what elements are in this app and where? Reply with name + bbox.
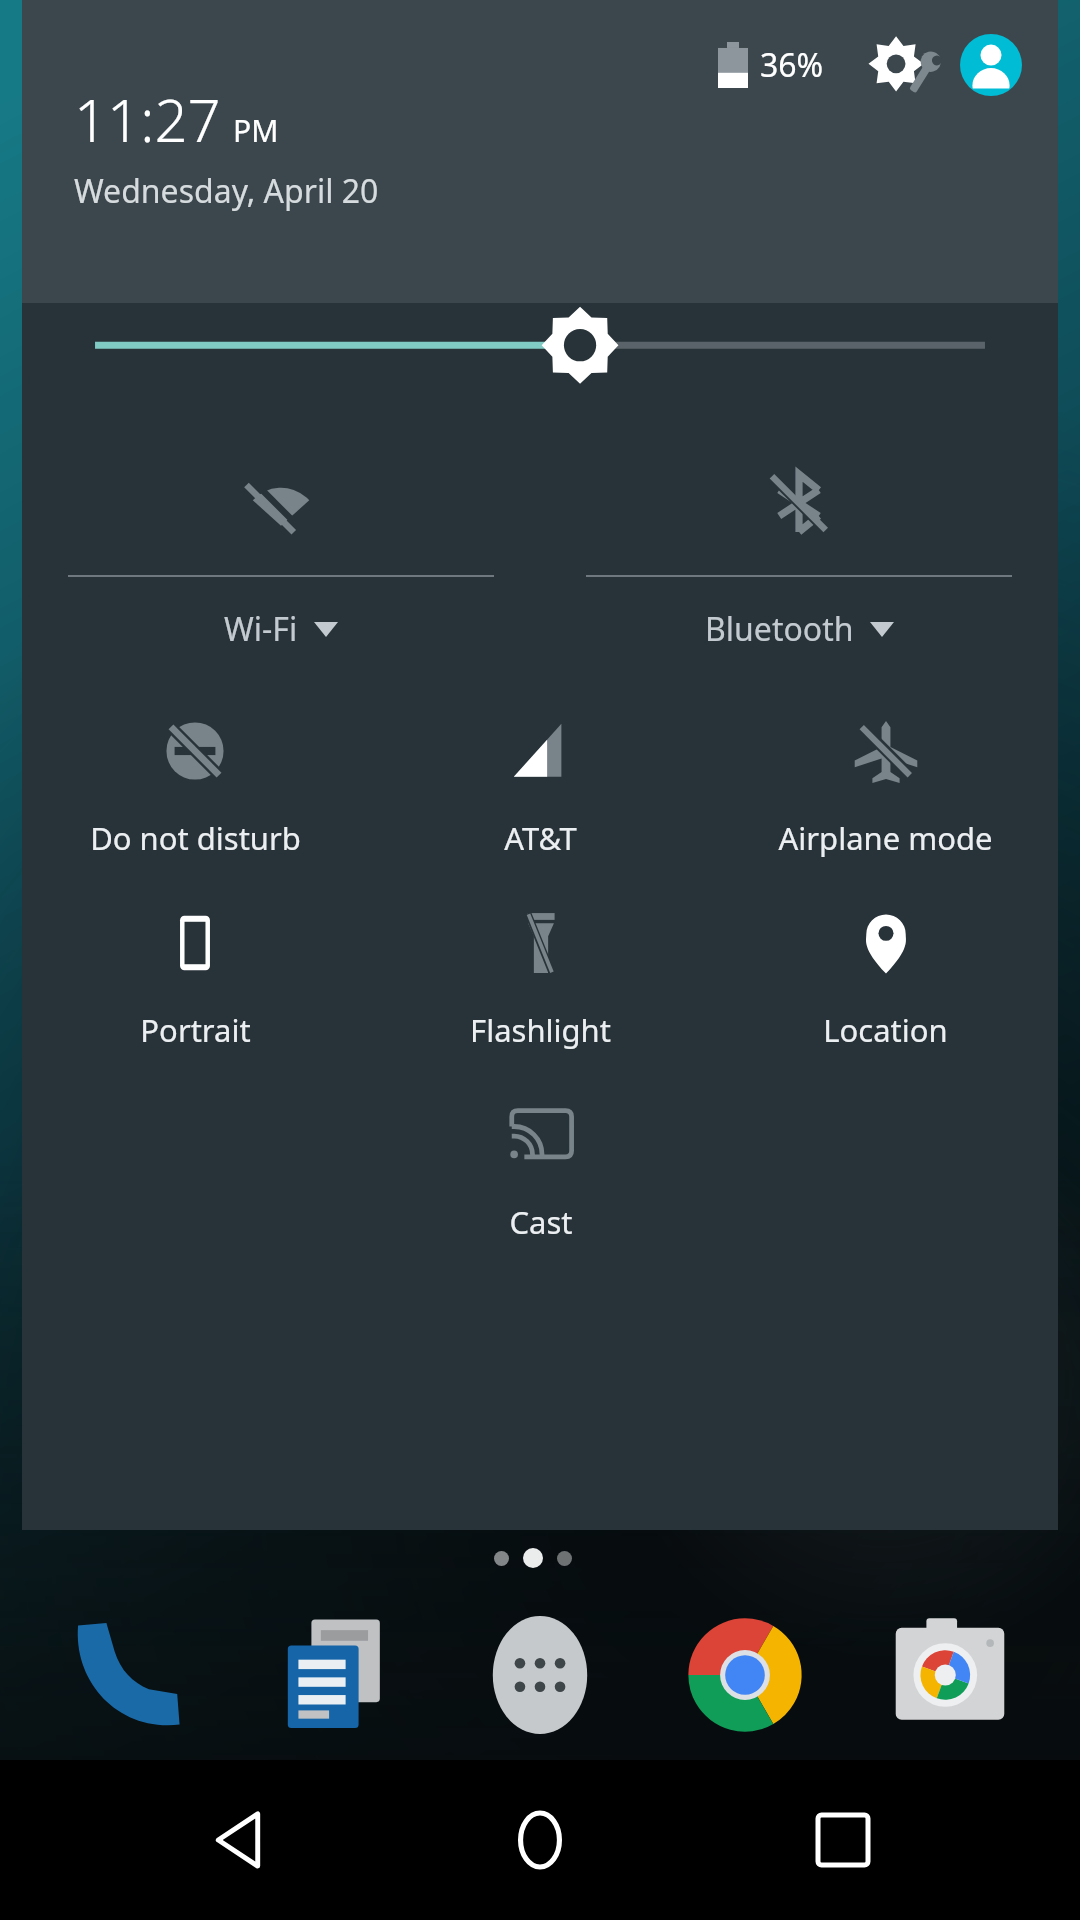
button[interactable]: Phone xyxy=(55,1600,205,1750)
staticText: Portrait xyxy=(140,1009,251,1051)
button[interactable]: Bluetooth xyxy=(540,465,1058,651)
button[interactable]: Settings xyxy=(868,35,946,95)
button[interactable]: Portrait xyxy=(22,887,368,1075)
button[interactable]: Camera xyxy=(875,1600,1025,1750)
staticText: Location xyxy=(823,1009,948,1051)
button[interactable]: Home xyxy=(475,1775,605,1905)
staticText: 36% xyxy=(760,43,824,87)
staticText: Wednesday, April 20 xyxy=(74,169,379,213)
button[interactable]: Location xyxy=(713,887,1058,1075)
staticText: Airplane mode xyxy=(778,817,993,859)
button[interactable]: Recent apps xyxy=(778,1775,908,1905)
button[interactable]: Wi-Fi xyxy=(22,465,540,651)
staticText: Bluetooth xyxy=(705,607,854,651)
button[interactable]: Do not disturb xyxy=(22,695,368,883)
staticText: PM xyxy=(233,110,279,151)
button[interactable]: AT&T xyxy=(368,695,713,883)
button[interactable]: All apps xyxy=(465,1600,615,1750)
staticText: Cast xyxy=(509,1201,573,1243)
button[interactable]: Flashlight xyxy=(368,887,713,1075)
staticText: Wi-Fi xyxy=(224,607,298,651)
button[interactable]: User profile xyxy=(960,34,1022,96)
button[interactable]: Brightness xyxy=(22,303,1058,431)
staticText: 11:27 xyxy=(74,80,221,159)
button[interactable]: Messages xyxy=(260,1600,410,1750)
button[interactable]: Chrome xyxy=(670,1600,820,1750)
staticText: Flashlight xyxy=(470,1009,611,1051)
staticText: Do not disturb xyxy=(90,817,301,859)
button[interactable]: Cast xyxy=(368,1079,713,1267)
button[interactable]: Airplane mode xyxy=(713,695,1058,883)
staticText: AT&T xyxy=(504,817,577,859)
button[interactable]: Back xyxy=(173,1775,303,1905)
